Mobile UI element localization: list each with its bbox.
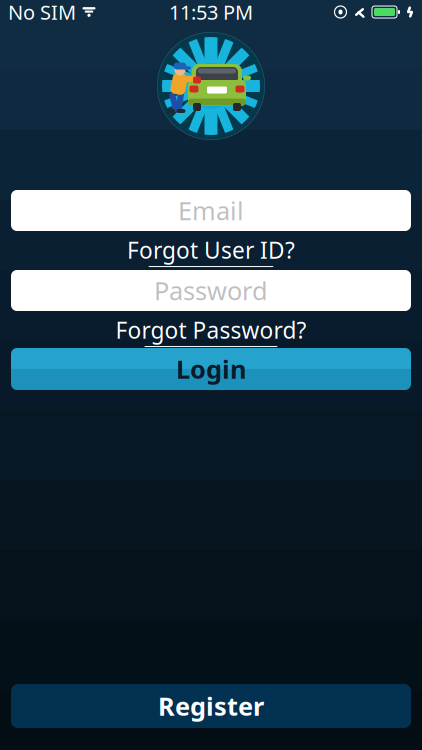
staticText: 11:53 PM [169, 0, 253, 25]
button[interactable]: Register [11, 684, 411, 728]
button[interactable]: Forgot User ID? [11, 240, 411, 262]
button[interactable]: Email [11, 190, 411, 231]
button[interactable]: Login [11, 348, 411, 390]
staticText: Email [178, 194, 244, 227]
staticText: Password [154, 274, 268, 307]
staticText: Forgot User ID? [127, 235, 295, 265]
button[interactable]: Password [11, 270, 411, 311]
button[interactable]: Forgot Password? [11, 320, 411, 342]
staticText: Register [158, 689, 264, 723]
staticText: Forgot Password? [115, 315, 306, 345]
staticText: No SIM [8, 0, 76, 25]
staticText: Login [176, 352, 246, 386]
